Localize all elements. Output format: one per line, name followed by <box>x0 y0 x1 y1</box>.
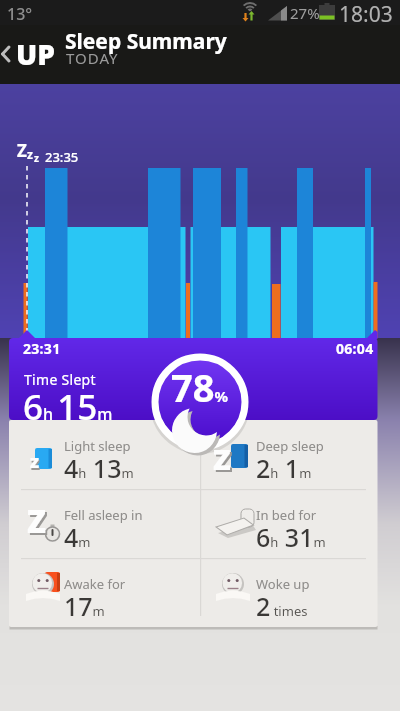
staticText: 78% <box>171 361 229 413</box>
staticText: 4m <box>64 520 91 554</box>
button[interactable] <box>0 25 64 84</box>
staticText: z <box>27 146 33 162</box>
button[interactable]: Woke up <box>201 558 378 627</box>
staticText: z <box>34 151 39 165</box>
button[interactable]: In bed for <box>201 489 378 558</box>
staticText: 27% <box>290 3 320 23</box>
staticText: Light sleep <box>64 437 131 455</box>
staticText: Sleep Summary <box>65 27 227 56</box>
staticText: z <box>30 449 40 474</box>
button[interactable]: Awake for <box>9 558 186 627</box>
button[interactable]: Fell asleep in <box>9 489 186 558</box>
staticText: Z <box>17 139 27 162</box>
staticText: 2h 1m <box>256 451 312 485</box>
staticText: 06:04 <box>336 339 374 358</box>
staticText: UP <box>16 35 55 73</box>
button[interactable]: Light sleep <box>9 420 186 489</box>
staticText: Z <box>215 441 233 480</box>
staticText: Deep sleep <box>256 437 324 455</box>
staticText: TODAY <box>66 48 119 68</box>
staticText: Time Slept <box>24 370 96 389</box>
staticText: 23:35 <box>45 148 79 166</box>
staticText: z <box>31 451 41 476</box>
staticText: Z <box>213 439 231 478</box>
staticText: In bed for <box>256 506 317 524</box>
staticText: 13° <box>7 3 33 25</box>
staticText: 18:03 <box>339 0 393 29</box>
staticText: Awake for <box>64 575 126 593</box>
staticText: 2 times <box>256 589 308 623</box>
staticText: 6h 31m <box>256 520 326 554</box>
staticText: Z <box>29 502 48 544</box>
staticText: Woke up <box>256 575 310 593</box>
staticText: 6h 15m <box>23 383 113 431</box>
button[interactable]: Deep sleep <box>201 420 378 489</box>
staticText: Z <box>27 500 46 542</box>
staticText: Fell asleep in <box>64 506 143 524</box>
staticText: 4h 13m <box>64 451 134 485</box>
staticText: 23:31 <box>23 339 61 358</box>
staticText: 17m <box>64 589 105 623</box>
